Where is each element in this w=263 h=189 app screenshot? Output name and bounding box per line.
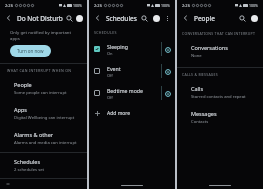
button[interactable]: Search [63, 12, 75, 24]
staticText: None [191, 53, 202, 59]
staticText: 2:26 [182, 3, 190, 8]
button[interactable]: Settings [162, 66, 173, 77]
button[interactable]: Unchecked [92, 66, 102, 76]
button[interactable]: Search [138, 12, 150, 24]
staticText: Messages [191, 110, 217, 117]
staticText: Off [107, 95, 113, 100]
staticText: Calls [191, 85, 204, 92]
other: Add more [92, 108, 102, 118]
staticText: On [107, 51, 113, 56]
button[interactable]: Add more [89, 104, 175, 122]
staticText: WHAT CAN INTERRUPT WHEN ON [7, 68, 72, 73]
button[interactable]: People [0, 76, 87, 101]
staticText: CONVERSATIONS THAT CAN INTERRUPT [182, 31, 256, 36]
button[interactable]: Search [236, 12, 248, 24]
button[interactable]: Schedules [0, 153, 87, 178]
staticText: 2:26 [94, 3, 102, 8]
staticText: Some people can interrupt [14, 90, 67, 96]
staticText: Conversations [191, 44, 228, 51]
staticText: SCHEDULES [94, 30, 117, 35]
staticText: Event [107, 65, 121, 72]
staticText: Schedules [14, 158, 41, 165]
staticText: Digital Wellbeing can interrupt [14, 115, 75, 121]
staticText: Turn on now [17, 48, 44, 54]
button[interactable]: Unchecked [92, 88, 102, 98]
button[interactable]: Unchecked [89, 60, 175, 82]
staticText: People [14, 81, 32, 88]
staticText: Alarms & other interruptions [14, 131, 81, 138]
staticText: 100% [73, 3, 82, 8]
button[interactable]: Conversations [177, 39, 263, 64]
staticText: Bedtime mode [107, 87, 143, 94]
button[interactable]: Apps [0, 101, 87, 126]
button[interactable]: Settings [162, 44, 173, 55]
button[interactable]: Account [150, 12, 162, 24]
button[interactable]: Back [3, 12, 15, 24]
staticText: Schedules [106, 14, 137, 23]
button[interactable]: Checked [92, 44, 102, 54]
staticText: Do Not Disturb [17, 14, 63, 23]
staticText: 100% [161, 3, 170, 8]
staticText: Alarms and media can interrupt [14, 140, 77, 146]
staticText: Apps [14, 106, 27, 113]
button[interactable]: Turn on now [10, 45, 51, 57]
button[interactable]: Calls [177, 80, 263, 105]
button[interactable]: Messages [177, 105, 263, 130]
staticText: Contacts [191, 119, 209, 125]
staticText: People [194, 14, 215, 23]
staticText: Off [107, 73, 113, 78]
button[interactable]: Unchecked [89, 82, 175, 104]
staticText: CALLS & MESSAGES [182, 72, 218, 77]
button[interactable]: More options [162, 13, 172, 23]
staticText: apps [10, 35, 20, 41]
staticText: Sleeping [107, 43, 128, 50]
staticText: Add more [107, 110, 131, 117]
button[interactable]: Expand [0, 179, 87, 189]
staticText: 100% [249, 3, 258, 8]
staticText: Starred contacts and repeat callers [191, 94, 257, 100]
button[interactable]: Back [180, 12, 192, 24]
button[interactable]: Settings [162, 88, 173, 99]
staticText: Only get notified by important people an… [10, 29, 77, 35]
button[interactable]: Back [92, 12, 104, 24]
button[interactable]: Checked [89, 38, 175, 60]
staticText: 2 schedules set [14, 167, 45, 173]
button[interactable]: Alarms & other interruptions [0, 126, 87, 151]
button[interactable]: Account [248, 12, 260, 24]
button[interactable]: Account [75, 12, 84, 24]
staticText: 2:26 [5, 3, 13, 8]
